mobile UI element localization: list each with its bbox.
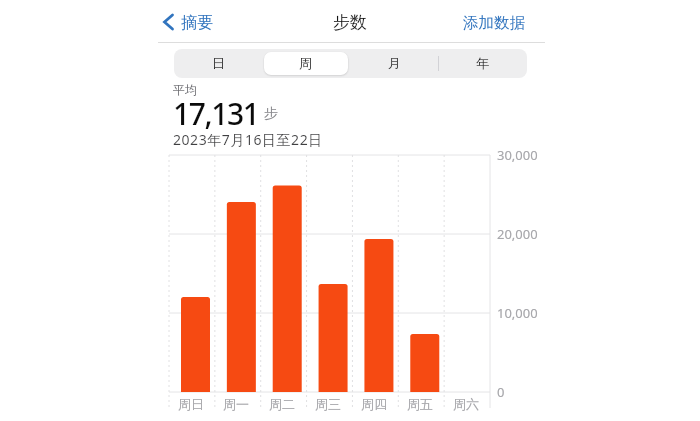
staticText: 步数 [333, 12, 367, 33]
staticText: 10,000 [497, 304, 538, 322]
staticText: 周日 [178, 396, 204, 412]
button[interactable]: 周 [299, 55, 312, 71]
staticText: 步 [264, 105, 278, 123]
staticText: 30,000 [497, 146, 538, 164]
button[interactable]: 月 [388, 55, 401, 71]
staticText: 20,000 [497, 225, 538, 243]
staticText: 17,131 [173, 93, 259, 134]
staticText: 周五 [407, 396, 433, 412]
button[interactable]: 日 [212, 55, 225, 71]
staticText: 周三 [315, 396, 341, 412]
button[interactable]: 添加数据 [463, 13, 525, 33]
button[interactable]: 摘要 [181, 13, 213, 33]
staticText: 周二 [269, 396, 295, 412]
staticText: 平均 [173, 82, 197, 97]
button[interactable] [160, 13, 176, 31]
staticText: 周四 [361, 396, 387, 412]
staticText: 2023年7月16日至22日 [173, 130, 323, 149]
button[interactable]: 年 [476, 55, 489, 71]
button[interactable] [264, 52, 348, 75]
staticText: 0 [497, 383, 505, 401]
staticText: 周一 [223, 396, 249, 412]
staticText: 周六 [453, 396, 479, 412]
